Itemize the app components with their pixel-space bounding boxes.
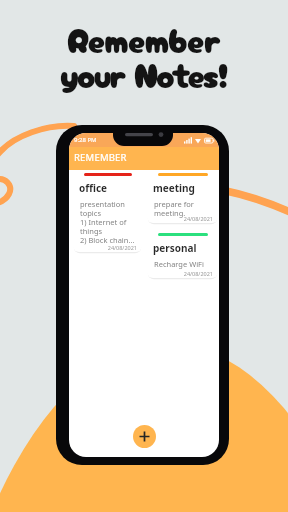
staticText: personal xyxy=(153,241,197,255)
button[interactable] xyxy=(73,173,142,252)
staticText: 24/08/2021 xyxy=(147,270,213,277)
staticText: 24/08/2021 xyxy=(147,215,213,222)
staticText: your Notes! xyxy=(60,49,228,98)
staticText: presentation topics 1) Internet of thing… xyxy=(80,199,135,245)
staticText: REMEMBER xyxy=(74,151,127,164)
staticText: Recharge WiFi xyxy=(154,259,204,269)
staticText: office xyxy=(79,181,108,195)
button[interactable] xyxy=(147,173,218,223)
staticText: 9:28 PM xyxy=(74,136,97,144)
staticText: prepare for meeting. xyxy=(154,199,194,218)
button[interactable]: Add note xyxy=(133,425,156,448)
staticText: meeting xyxy=(153,181,195,195)
button[interactable] xyxy=(147,233,218,278)
staticText: Remember xyxy=(67,14,222,63)
staticText: 24/08/2021 xyxy=(73,244,137,251)
